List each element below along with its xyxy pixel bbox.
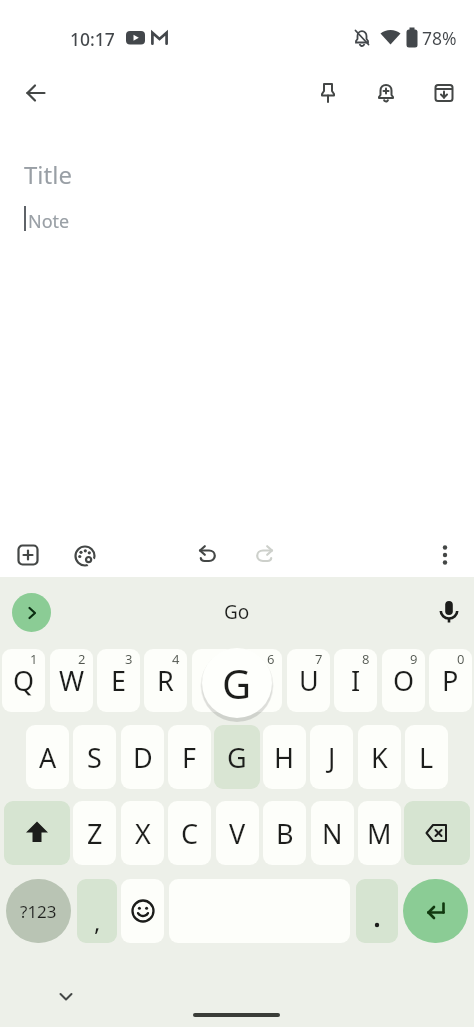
staticText: Z [87,815,103,852]
button[interactable] [61,532,109,580]
staticText: L [419,739,434,776]
staticText: 4 [172,650,180,668]
button[interactable]: I [334,649,377,712]
button[interactable] [356,879,398,943]
button[interactable]: , [77,879,117,943]
button[interactable]: D [121,725,164,789]
button[interactable] [4,801,70,865]
button[interactable] [42,973,90,1021]
staticText: V [229,815,246,852]
staticText: B [276,815,294,852]
button[interactable]: E [97,649,140,712]
button[interactable]: T [192,649,235,712]
button[interactable]: J [310,725,353,789]
button[interactable] [4,531,52,579]
staticText: J [328,739,336,776]
staticText: 7 [315,650,323,668]
button[interactable]: G [214,725,260,789]
button[interactable]: P [429,649,472,712]
staticText: P [442,662,459,699]
staticText: N [322,815,343,852]
button[interactable]: U [287,649,330,712]
button[interactable]: A [26,725,69,789]
staticText: F [182,739,197,776]
staticText: 9 [410,650,418,668]
button[interactable]: S [73,725,116,789]
button[interactable] [404,801,470,865]
button[interactable]: Z [73,801,116,865]
button[interactable]: Y [239,649,282,712]
staticText: X [135,815,151,852]
staticText: 3 [125,650,133,668]
staticText: E [111,662,127,699]
button[interactable]: X [121,801,164,865]
staticText: U [299,662,319,699]
staticText: 6 [267,650,275,668]
button[interactable]: Go [224,599,250,625]
button[interactable]: B [263,801,306,865]
button[interactable] [12,593,51,632]
button[interactable]: F [168,725,211,789]
button[interactable] [421,531,469,579]
staticText: Q [13,662,35,699]
button[interactable] [362,69,410,117]
button[interactable]: N [311,801,354,865]
staticText: G [222,656,252,710]
staticText: 2 [78,650,86,668]
button[interactable] [241,531,289,579]
button[interactable] [425,588,473,636]
staticText: 78% [422,26,457,50]
staticText: R [157,662,174,699]
button[interactable]: H [263,725,306,789]
staticText: K [371,739,388,776]
staticText: 1 [30,650,38,668]
button[interactable]: C [168,801,211,865]
button[interactable] [183,531,231,579]
button[interactable]: V [216,801,259,865]
staticText: O [393,662,415,699]
button[interactable] [304,69,352,117]
staticText: G [227,739,247,776]
button[interactable] [403,879,468,943]
button[interactable]: ?123 [6,879,71,943]
button[interactable]: K [358,725,401,789]
button[interactable]: L [405,725,448,789]
button[interactable]: W [50,649,93,712]
staticText: W [59,662,85,699]
staticText: ?123 [20,900,57,923]
staticText: S [87,739,102,776]
staticText: H [274,739,295,776]
button[interactable] [121,879,164,943]
staticText: C [181,815,199,852]
staticText: , [94,905,101,938]
button[interactable]: R [144,649,187,712]
button[interactable]: M [358,801,401,865]
staticText: 8 [362,650,370,668]
staticText: A [39,739,57,776]
staticText: Note [28,209,70,234]
button[interactable] [420,69,468,117]
button[interactable] [12,69,60,117]
staticText: D [133,739,153,776]
staticText: Y [253,662,269,699]
staticText: 0 [457,650,465,668]
staticText: 10:17 [70,27,115,51]
button[interactable]: O [382,649,425,712]
staticText: M [367,815,392,852]
button[interactable]: Q [2,649,45,712]
staticText: Title [24,158,72,191]
staticText: I [351,662,361,699]
